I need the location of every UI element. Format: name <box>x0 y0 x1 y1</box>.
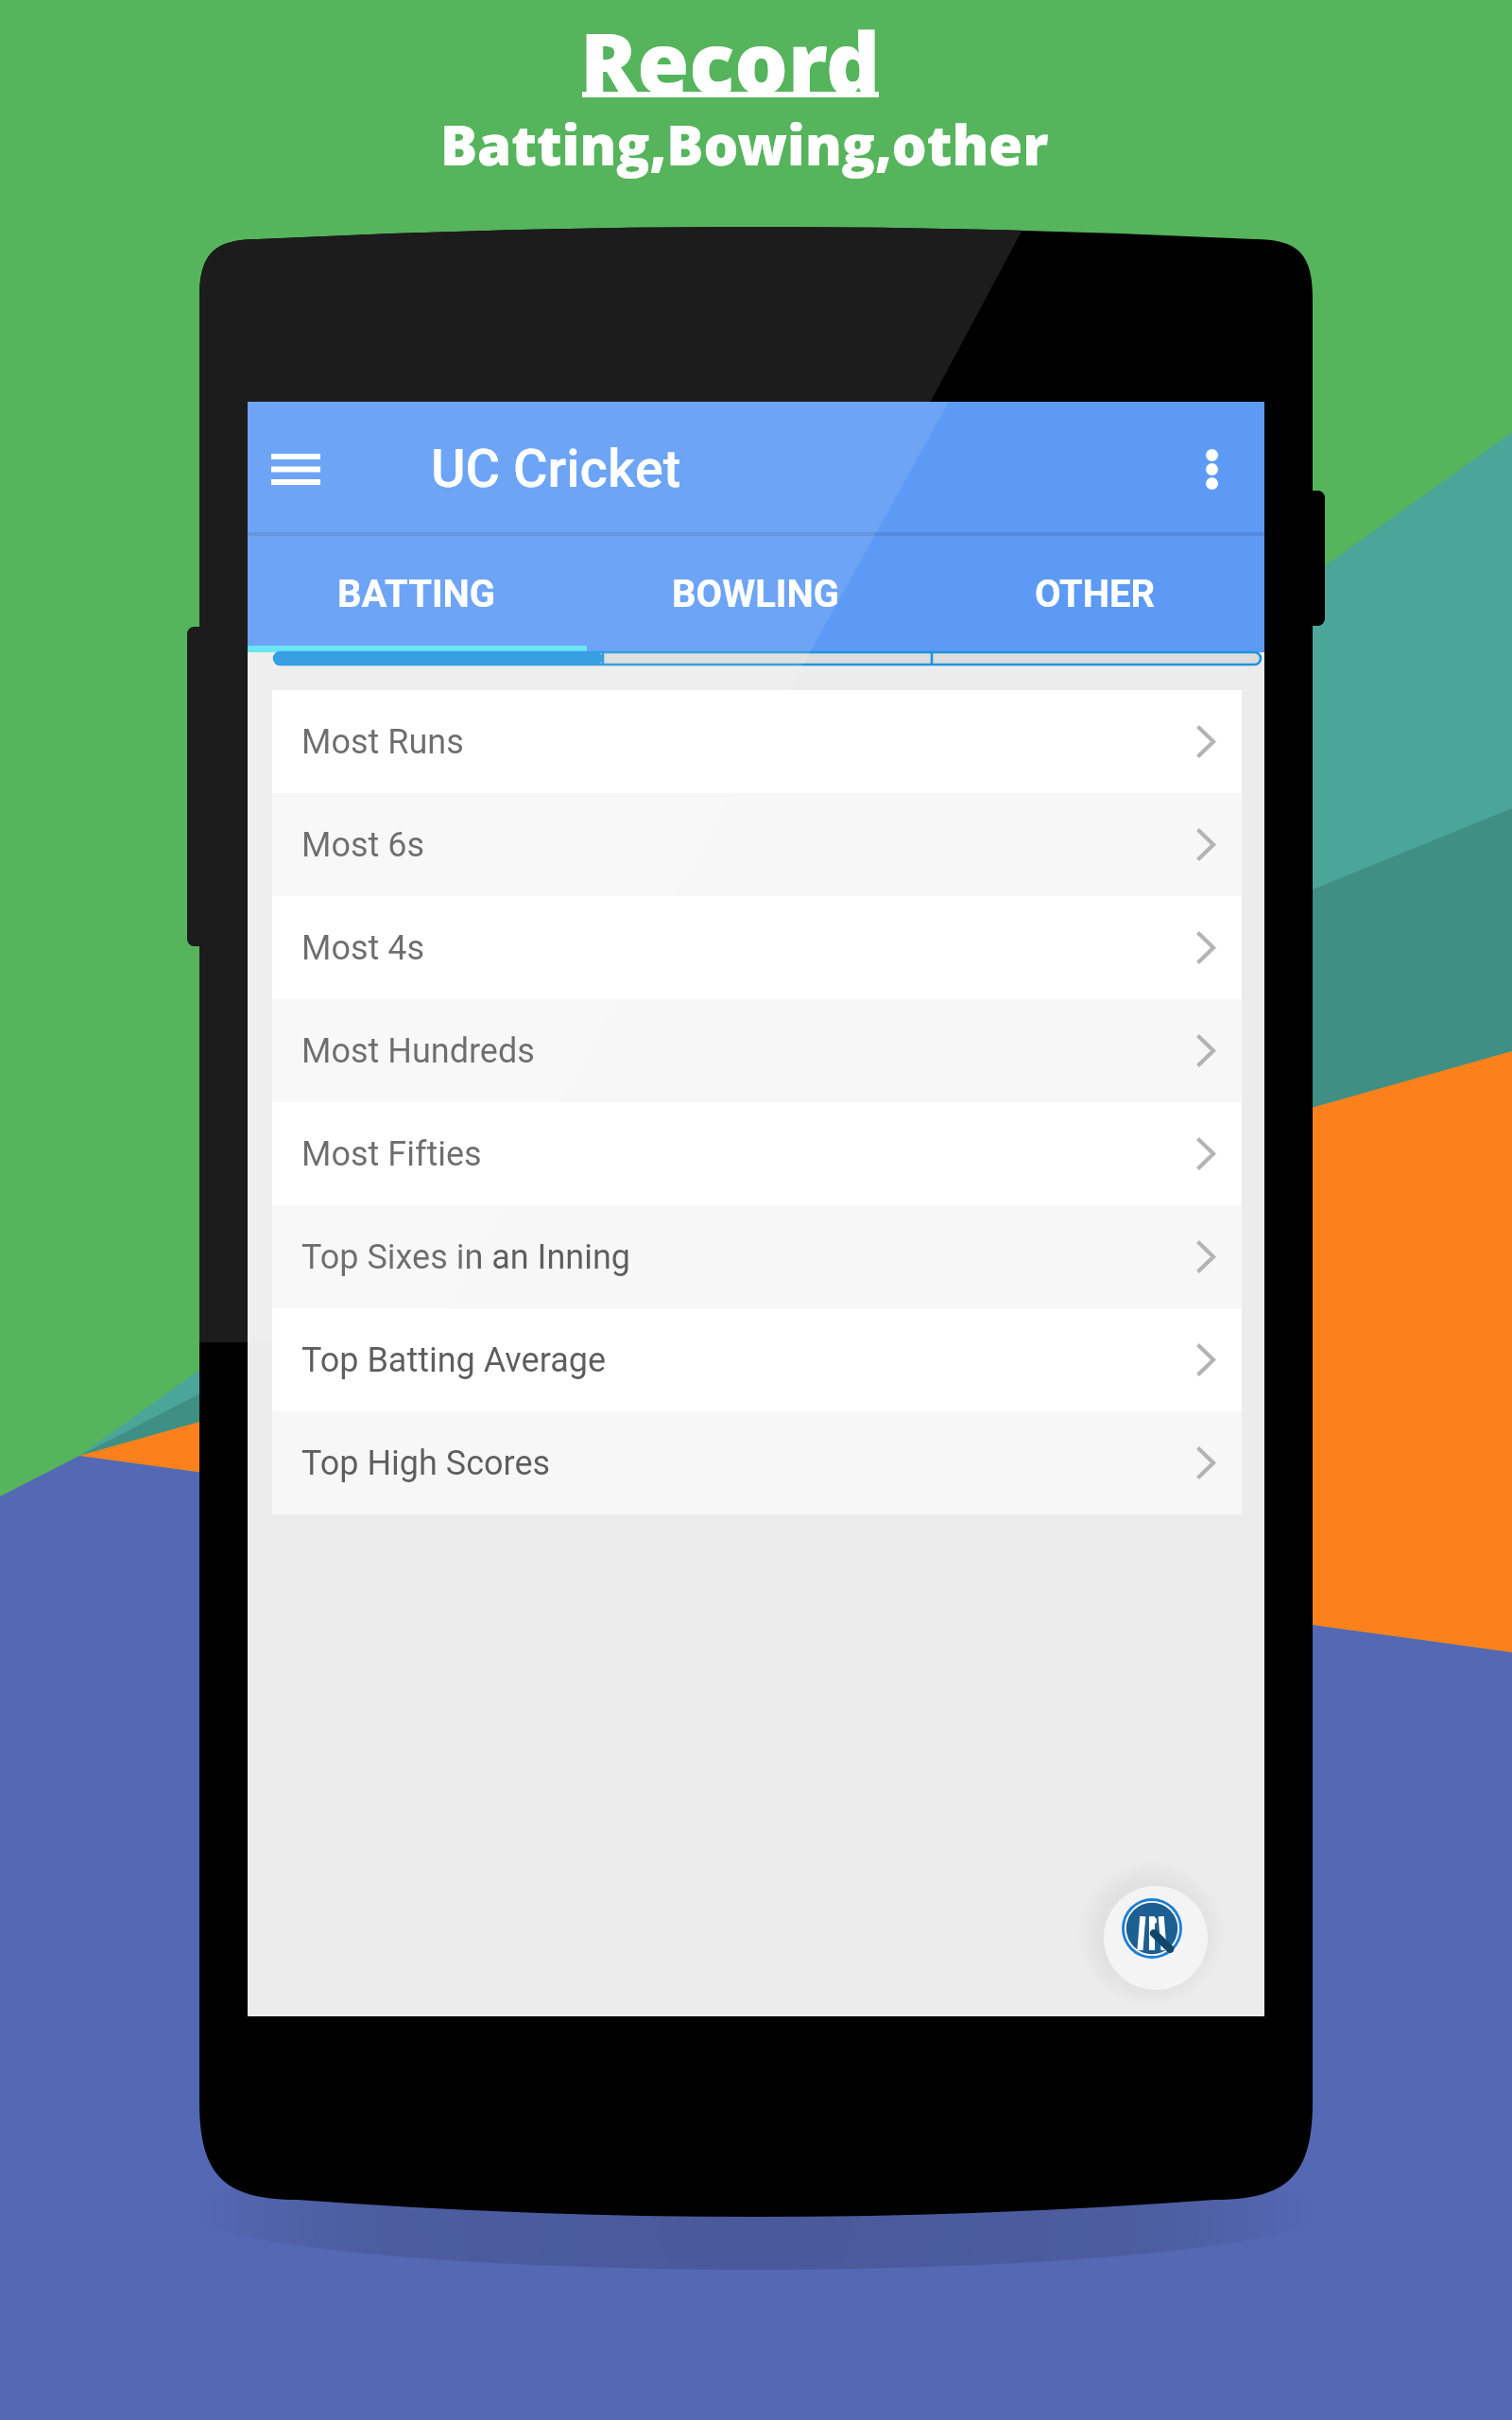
staticText: Top Sixes in an Inning <box>301 1237 631 1277</box>
staticText: Record <box>580 4 881 118</box>
button[interactable]: Most 6s <box>272 793 1242 896</box>
button[interactable]: BATTING <box>248 536 586 652</box>
staticText: UC Cricket <box>431 438 681 500</box>
button[interactable]: Open navigation drawer <box>248 402 343 536</box>
staticText: Most 4s <box>301 928 425 968</box>
button[interactable]: OTHER <box>925 536 1264 652</box>
staticText: BATTING <box>337 572 496 616</box>
button[interactable]: Most Hundreds <box>272 999 1242 1102</box>
button[interactable]: Most Fifties <box>272 1102 1242 1205</box>
button[interactable]: UC Cricket <box>1104 1886 1208 1990</box>
button[interactable]: Most 4s <box>272 896 1242 999</box>
button[interactable]: More options <box>1159 402 1264 536</box>
staticText: BOWLING <box>672 572 839 616</box>
staticText: Top Batting Average <box>301 1340 607 1380</box>
staticText: Top High Scores <box>301 1443 551 1483</box>
button[interactable]: Top Sixes in an Inning <box>272 1205 1242 1308</box>
staticText: OTHER <box>1035 572 1156 616</box>
button[interactable]: BOWLING <box>586 536 925 652</box>
staticText: Most Fifties <box>301 1134 482 1174</box>
staticText: Most 6s <box>301 825 425 865</box>
staticText: Most Hundreds <box>301 1031 535 1071</box>
button[interactable]: Top High Scores <box>272 1411 1242 1514</box>
button[interactable]: Top Batting Average <box>272 1308 1242 1411</box>
staticText: Batting,Bowing,other <box>440 107 1049 181</box>
button[interactable]: Most Runs <box>272 690 1242 793</box>
staticText: Most Runs <box>301 722 464 762</box>
